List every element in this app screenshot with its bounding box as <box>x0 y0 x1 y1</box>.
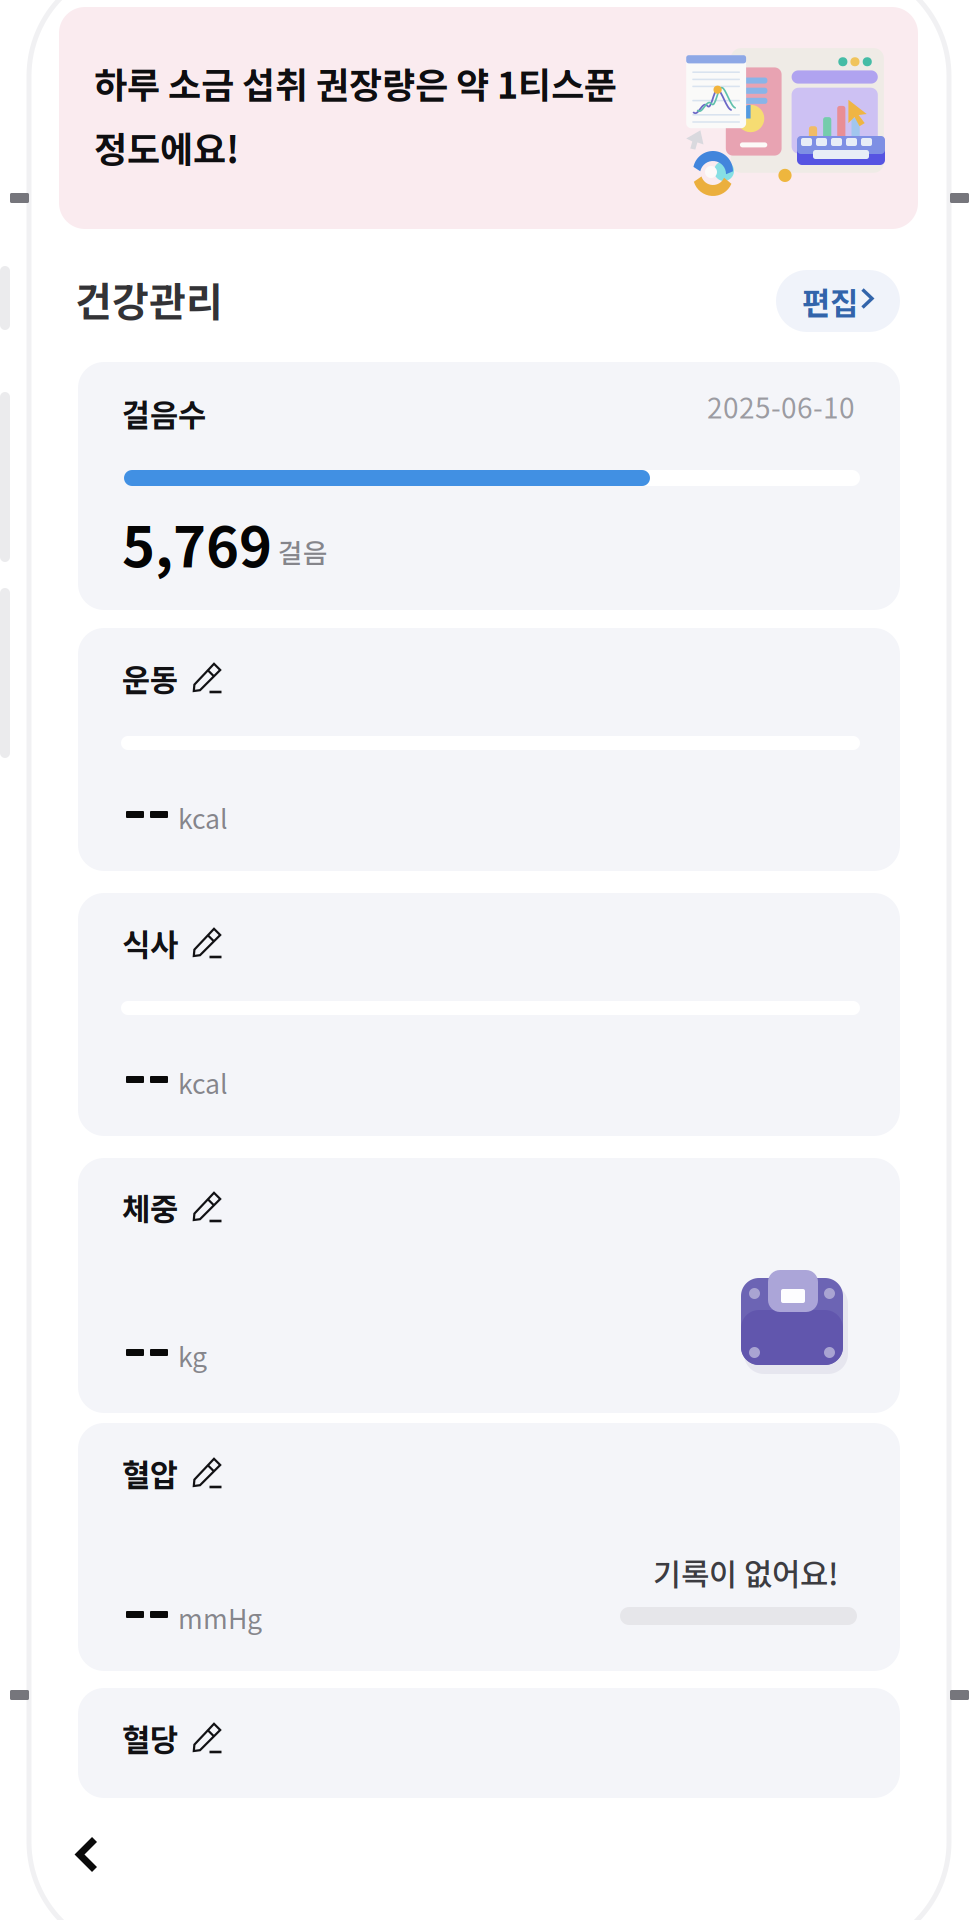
button[interactable]: 운동 <box>78 628 900 871</box>
staticText: 걸음수 <box>122 391 206 435</box>
staticText: 5,769 <box>122 502 272 583</box>
staticText: mmHg <box>178 1598 262 1637</box>
button[interactable]: 혈당 <box>78 1688 900 1798</box>
staticText: 2025-06-10 <box>707 386 855 426</box>
staticText: 체중 <box>122 1185 178 1229</box>
button[interactable]: 식사 <box>78 893 900 1136</box>
staticText: kg <box>178 1336 207 1375</box>
staticText: 기록이 없어요! <box>653 1550 839 1594</box>
button[interactable]: 편집 <box>776 270 900 332</box>
staticText: 걸음 <box>278 532 328 571</box>
staticText: 운동 <box>122 656 178 700</box>
staticText: 혈압 <box>122 1451 178 1495</box>
button[interactable]: 혈압 <box>78 1423 900 1671</box>
button[interactable]: 체중 <box>78 1158 900 1413</box>
staticText: 정도에요! <box>94 121 239 173</box>
staticText: 식사 <box>122 921 178 965</box>
staticText: 하루 소금 섭취 권장량은 약 1티스푼 <box>94 57 617 109</box>
staticText: kcal <box>178 798 228 837</box>
staticText: 편집 <box>802 279 858 323</box>
button[interactable]: 걸음수 <box>78 362 900 610</box>
staticText: kcal <box>178 1063 228 1102</box>
button[interactable]: Back <box>58 1818 116 1891</box>
staticText: 건강관리 <box>75 270 223 328</box>
staticText: 혈당 <box>122 1716 178 1760</box>
